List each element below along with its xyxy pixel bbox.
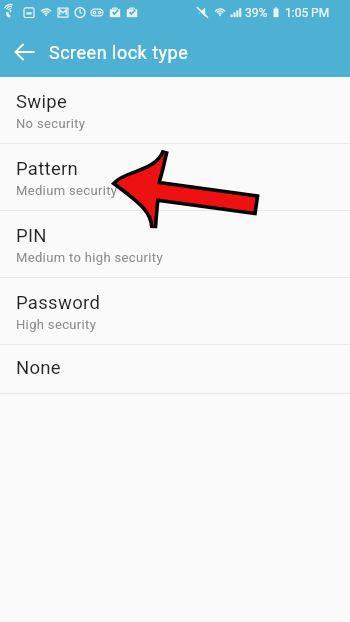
button[interactable]: PIN xyxy=(0,211,350,278)
staticText: High security xyxy=(16,317,97,332)
staticText: Medium to high security xyxy=(16,250,163,265)
staticText: Swipe xyxy=(16,91,68,113)
staticText: Medium security xyxy=(16,183,118,198)
staticText: Screen lock type xyxy=(49,42,189,63)
staticText: No security xyxy=(16,116,86,131)
button[interactable]: Navigate up xyxy=(6,33,44,71)
staticText: Password xyxy=(16,292,101,314)
staticText: Pattern xyxy=(16,158,79,180)
button[interactable]: Swipe xyxy=(0,77,350,144)
staticText: PIN xyxy=(16,225,47,247)
button[interactable]: Password xyxy=(0,278,350,345)
button[interactable]: None xyxy=(0,345,350,394)
staticText: None xyxy=(16,357,61,379)
staticText: 39% xyxy=(245,6,268,20)
button[interactable]: Pattern xyxy=(0,144,350,211)
staticText: 1:05 PM xyxy=(285,6,330,20)
